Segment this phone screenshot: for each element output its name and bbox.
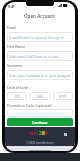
staticText: Enter your Surname as in your passport [9, 73, 71, 77]
staticText: Continue [32, 120, 48, 125]
staticText: First Name [7, 44, 26, 49]
staticText: Surname [7, 63, 23, 68]
staticText: Date of birth [7, 85, 29, 90]
staticText: DD [15, 94, 20, 98]
staticText: Enter your First Name as in your passpor… [9, 54, 73, 58]
button[interactable]: Enter your First Name as in your passpor… [7, 51, 73, 61]
staticText: bet [30, 130, 39, 137]
staticText: E-mail format is required for sign in [9, 35, 64, 39]
staticText: YYYY [59, 94, 67, 98]
button[interactable]: Enter your Surname as in your passport [7, 70, 73, 80]
staticText: MM [37, 94, 43, 98]
staticText: 2 [39, 130, 42, 137]
staticText: Promotion Code (optional) [7, 103, 52, 108]
button[interactable]: E-mail format is required for sign in [7, 32, 73, 42]
staticText: 8 [45, 130, 48, 137]
button[interactable]: MM [30, 92, 50, 100]
button[interactable]: DD [7, 92, 27, 100]
staticText: Email [7, 25, 17, 30]
button[interactable]: Continue [7, 118, 73, 126]
staticText: © 2024 sportsbet.com [5, 141, 75, 145]
staticText: 9:41 [8, 4, 15, 9]
staticText: 8 [42, 130, 45, 137]
staticText: Open Account [24, 13, 56, 19]
button[interactable] [7, 109, 73, 117]
button[interactable]: YYYY [53, 92, 73, 100]
